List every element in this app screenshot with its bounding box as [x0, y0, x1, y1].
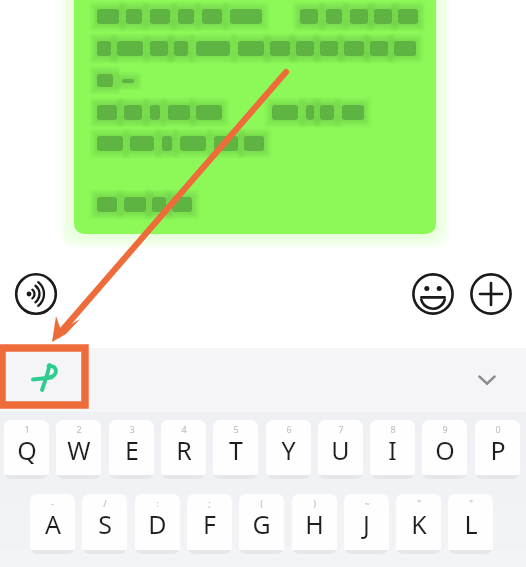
staticText: 8 — [390, 423, 396, 435]
staticText: S — [98, 507, 112, 541]
button[interactable]: ) — [292, 494, 337, 554]
button[interactable]: " — [448, 494, 493, 554]
button[interactable]: ~ — [344, 494, 389, 554]
button[interactable]: 4 — [161, 420, 206, 479]
staticText: Y — [281, 433, 296, 467]
button[interactable]: ( — [239, 494, 284, 554]
button[interactable]: 8 — [370, 420, 415, 479]
button[interactable]: 2 — [56, 420, 101, 479]
staticText: 5 — [233, 423, 239, 435]
button[interactable]: 5 — [213, 420, 258, 479]
staticText: 3 — [129, 423, 135, 435]
staticText: " — [469, 497, 473, 509]
button[interactable]: More — [469, 272, 513, 316]
staticText: : — [156, 497, 159, 509]
button[interactable]: " — [396, 494, 441, 554]
button[interactable]: 0 — [475, 420, 520, 479]
button[interactable]: Input method — [6, 352, 82, 404]
staticText: 4 — [181, 423, 187, 435]
staticText: ~ — [364, 497, 370, 509]
staticText: 0 — [495, 423, 501, 435]
button[interactable]: 1 — [4, 420, 49, 479]
staticText: ) — [313, 497, 316, 509]
button[interactable]: - — [30, 494, 75, 554]
button[interactable]: ; — [187, 494, 232, 554]
staticText: A — [45, 507, 61, 541]
staticText: W — [67, 433, 91, 467]
staticText: R — [176, 433, 192, 467]
button[interactable]: 6 — [266, 420, 311, 479]
staticText: K — [411, 507, 427, 541]
button[interactable]: Voice input — [14, 272, 58, 316]
staticText: " — [417, 497, 421, 509]
staticText: 2 — [76, 423, 82, 435]
button[interactable]: 9 — [422, 420, 467, 479]
button[interactable]: Collapse — [464, 358, 510, 402]
staticText: T — [229, 433, 243, 467]
staticText: - — [51, 497, 54, 509]
staticText: I — [388, 433, 397, 467]
staticText: ; — [208, 497, 211, 509]
staticText: D — [148, 507, 167, 541]
staticText: E — [125, 433, 139, 467]
staticText: 7 — [338, 423, 344, 435]
staticText: O — [435, 433, 455, 467]
staticText: 6 — [286, 423, 292, 435]
staticText: 9 — [442, 423, 448, 435]
button[interactable]: Emoji — [411, 272, 455, 316]
staticText: ( — [260, 497, 263, 509]
button[interactable]: 7 — [318, 420, 363, 479]
staticText: / — [103, 497, 107, 509]
button[interactable]: / — [82, 494, 127, 554]
button[interactable]: : — [135, 494, 180, 554]
staticText: F — [203, 507, 216, 541]
staticText: L — [464, 507, 478, 541]
staticText: H — [305, 507, 324, 541]
staticText: J — [363, 507, 370, 541]
staticText: Q — [17, 433, 37, 467]
staticText: P — [490, 433, 506, 467]
staticText: G — [252, 507, 271, 541]
staticText: U — [331, 433, 350, 467]
staticText: 1 — [24, 423, 30, 435]
button[interactable]: 3 — [109, 420, 154, 479]
